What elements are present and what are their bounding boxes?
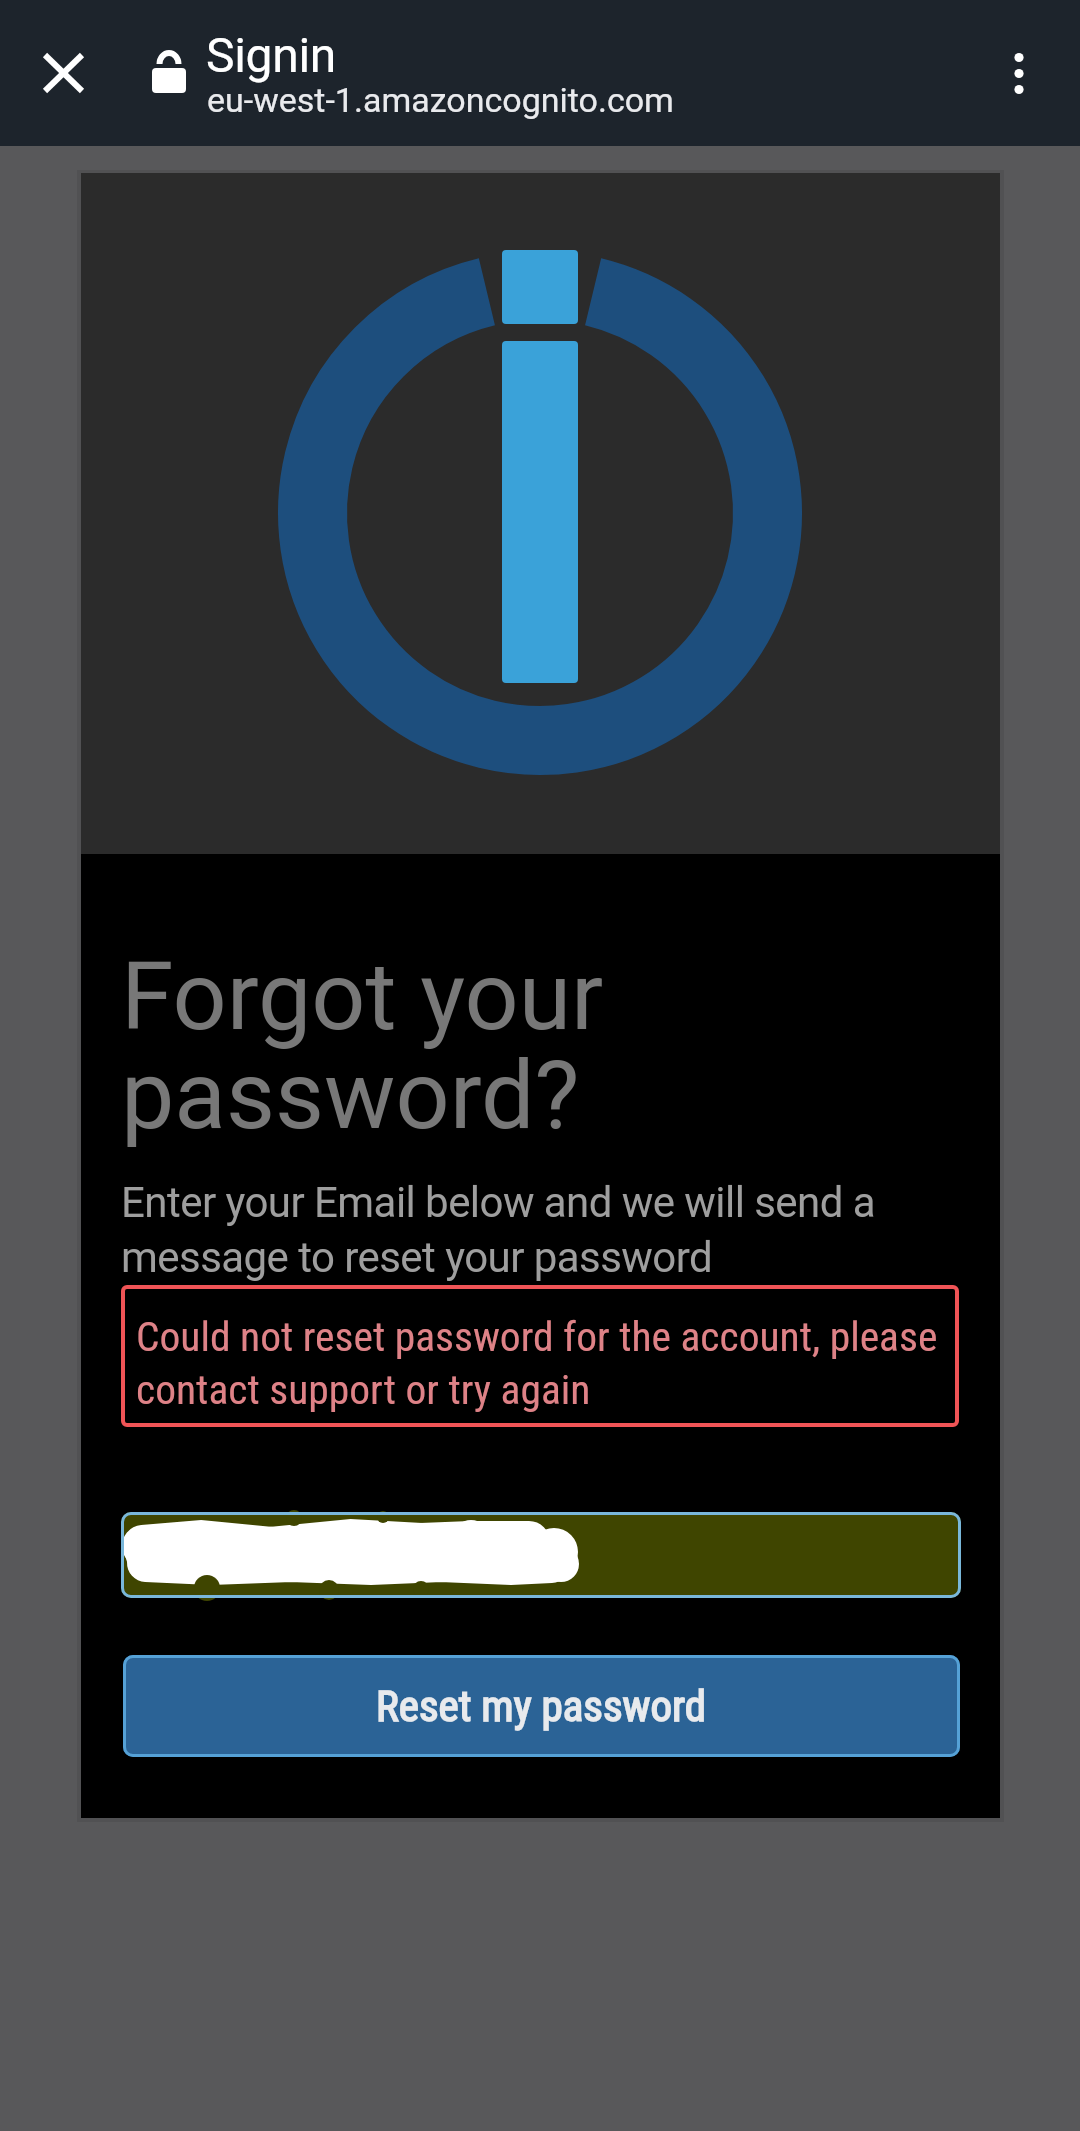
staticText: Reset my password bbox=[376, 1681, 707, 1731]
staticText: Forgot your password? bbox=[121, 941, 604, 1152]
staticText: eu-west-1.amazoncognito.com bbox=[207, 80, 674, 120]
staticText: Enter your Email below and we will send … bbox=[121, 1178, 875, 1282]
button[interactable] bbox=[35, 45, 91, 101]
button[interactable] bbox=[121, 1512, 961, 1598]
button[interactable]: Reset my password bbox=[123, 1655, 960, 1757]
button[interactable] bbox=[991, 45, 1047, 101]
staticText: Signin bbox=[206, 27, 337, 83]
staticText: Could not reset password for the account… bbox=[136, 1312, 938, 1414]
